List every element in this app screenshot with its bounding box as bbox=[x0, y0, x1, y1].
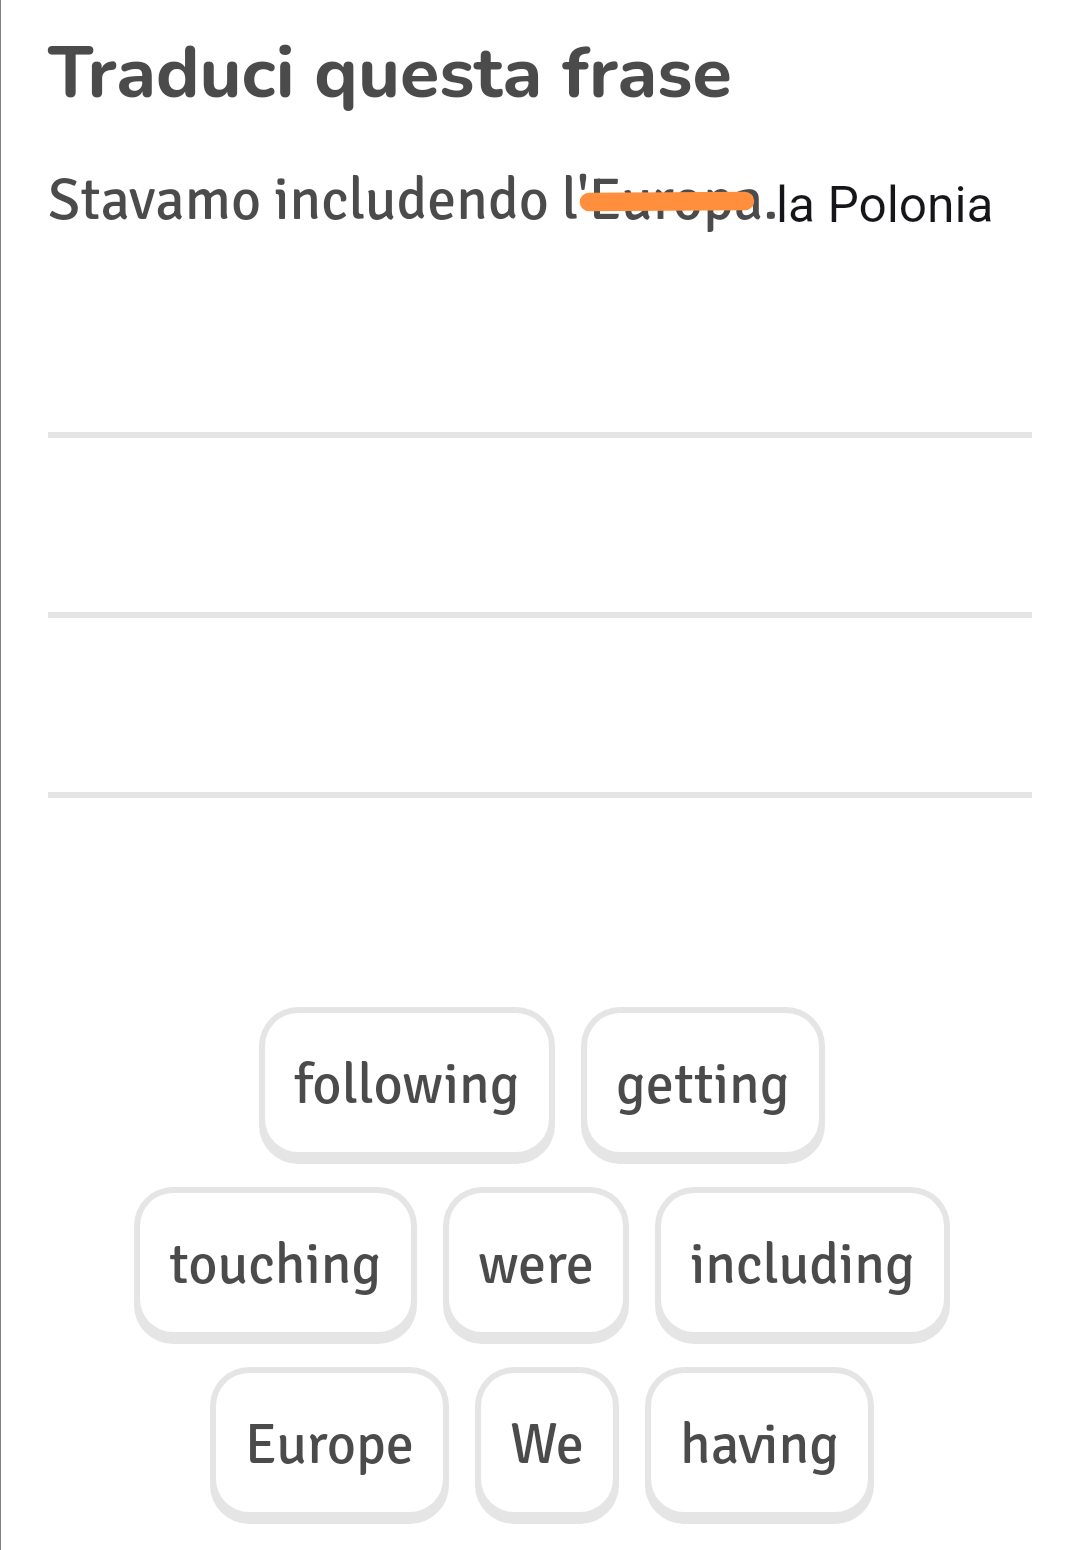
button[interactable]: getting bbox=[581, 1007, 825, 1164]
staticText: having bbox=[680, 1410, 839, 1479]
button[interactable]: having bbox=[645, 1367, 874, 1524]
staticText: Europe bbox=[245, 1410, 414, 1479]
button[interactable]: Answer slot 2 bbox=[48, 438, 1032, 618]
staticText: including bbox=[690, 1230, 915, 1299]
button[interactable]: touching bbox=[134, 1187, 417, 1344]
staticText: la Polonia bbox=[776, 176, 994, 234]
button[interactable]: Answer slot 3 bbox=[48, 618, 1032, 798]
button[interactable]: were bbox=[443, 1187, 629, 1344]
staticText: getting bbox=[616, 1050, 790, 1119]
button[interactable]: We bbox=[475, 1367, 619, 1524]
button[interactable]: Europe bbox=[210, 1367, 449, 1524]
button[interactable]: including bbox=[655, 1187, 950, 1344]
staticText: Traduci questa frase bbox=[48, 24, 732, 122]
staticText: were bbox=[478, 1230, 594, 1299]
staticText: touching bbox=[169, 1230, 382, 1299]
button[interactable]: Answer slot 1 bbox=[48, 258, 1032, 438]
staticText: Stavamo includendo l'Europa. bbox=[48, 164, 779, 235]
staticText: We bbox=[510, 1410, 584, 1479]
staticText: following bbox=[294, 1050, 520, 1119]
button[interactable]: following bbox=[259, 1007, 555, 1164]
